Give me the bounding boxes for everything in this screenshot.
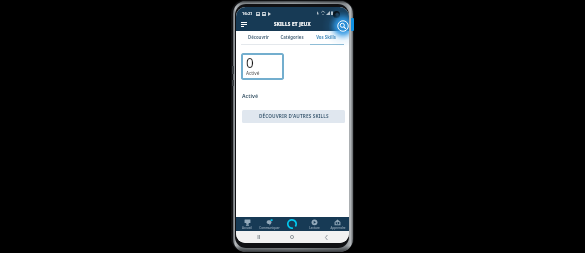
staticText: Découvrir (248, 34, 269, 40)
staticText: Vos Skills (316, 34, 336, 40)
button[interactable]: Back (321, 232, 331, 242)
button[interactable]: Home (287, 232, 297, 242)
button[interactable]: Search (322, 7, 349, 47)
staticText: Apprendre (330, 226, 346, 230)
staticText: SKILLS ET JEUX (274, 21, 311, 27)
button[interactable]: Open navigation menu (241, 22, 248, 29)
button[interactable]: Communiquer (258, 217, 280, 231)
staticText: DÉCOUVRIR D'AUTRES SKILLS (259, 113, 329, 119)
staticText: Communiquer (259, 226, 280, 230)
staticText: Activé (242, 92, 259, 99)
staticText: Catégories (280, 34, 304, 40)
staticText: 16:21 (242, 11, 253, 17)
staticText: 0 (246, 54, 254, 72)
button[interactable]: Apprendre (326, 217, 349, 231)
button[interactable]: Alexa (280, 217, 303, 231)
button[interactable]: Vos Skills (309, 31, 343, 45)
button[interactable]: 0 (241, 53, 284, 80)
staticText: Activé (246, 70, 260, 76)
button[interactable]: DÉCOUVRIR D'AUTRES SKILLS (242, 110, 345, 123)
button[interactable]: Découvrir (242, 31, 275, 45)
button[interactable]: Accueil (236, 217, 258, 231)
button[interactable]: Recent apps (254, 232, 264, 242)
button[interactable]: Catégories (275, 31, 309, 45)
staticText: Accueil (242, 226, 252, 230)
staticText: Lecture (309, 226, 320, 230)
button[interactable]: Lecture (303, 217, 326, 231)
